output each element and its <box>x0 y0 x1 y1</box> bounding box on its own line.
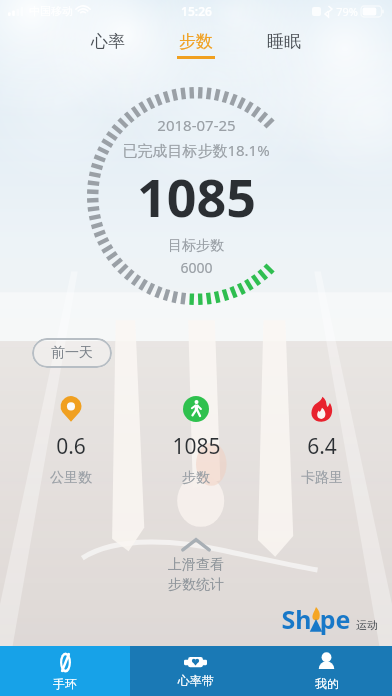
button[interactable]: Distance <box>16 394 126 489</box>
staticText: 运动 <box>356 618 378 632</box>
other: Band <box>55 652 76 673</box>
button[interactable]: Steps <box>141 394 251 489</box>
staticText: 步数 <box>179 31 213 52</box>
button[interactable]: 心率 <box>83 28 133 62</box>
other: Profile <box>316 652 337 673</box>
staticText: 6.4 <box>307 432 337 461</box>
staticText: 中国移动 <box>29 4 73 18</box>
staticText: 0.6 <box>56 432 86 461</box>
button[interactable]: Calories <box>267 394 377 489</box>
other: Distance <box>58 396 84 422</box>
staticText: 手环 <box>53 676 77 691</box>
staticText: 我的 <box>315 676 339 691</box>
staticText: 6000 <box>180 258 213 277</box>
staticText: Sh pe <box>281 602 351 636</box>
other: Swipe up <box>181 537 211 552</box>
staticText: 已完成目标步数18.1% <box>122 140 270 160</box>
staticText: 79% <box>336 4 358 19</box>
staticText: 2018-07-25 <box>157 115 236 135</box>
staticText: 心率带 <box>178 673 214 688</box>
staticText: 睡眠 <box>267 31 301 52</box>
button[interactable]: Band <box>0 646 130 696</box>
button[interactable]: Heart rate belt <box>130 646 261 696</box>
staticText: 公里数 <box>50 469 92 487</box>
other: Steps <box>183 396 209 422</box>
staticText: 目标步数 <box>168 237 224 255</box>
staticText: 上滑查看 <box>168 556 224 574</box>
button[interactable]: 步数 <box>171 28 221 62</box>
button[interactable]: Profile <box>261 646 392 696</box>
staticText: 卡路里 <box>301 469 343 487</box>
staticText: 步数统计 <box>168 576 224 594</box>
staticText: 1085 <box>137 161 256 232</box>
staticText: 步数 <box>182 469 210 487</box>
staticText: 前一天 <box>51 344 93 362</box>
staticText: 1085 <box>172 432 221 461</box>
other: Calories <box>309 396 335 422</box>
staticText: 心率 <box>91 31 125 52</box>
button[interactable]: 睡眠 <box>259 28 309 62</box>
other: Heart rate belt <box>184 655 207 670</box>
staticText: 15:26 <box>181 3 212 19</box>
button[interactable]: 前一天 <box>32 338 112 368</box>
button[interactable]: Swipe up <box>0 537 392 594</box>
